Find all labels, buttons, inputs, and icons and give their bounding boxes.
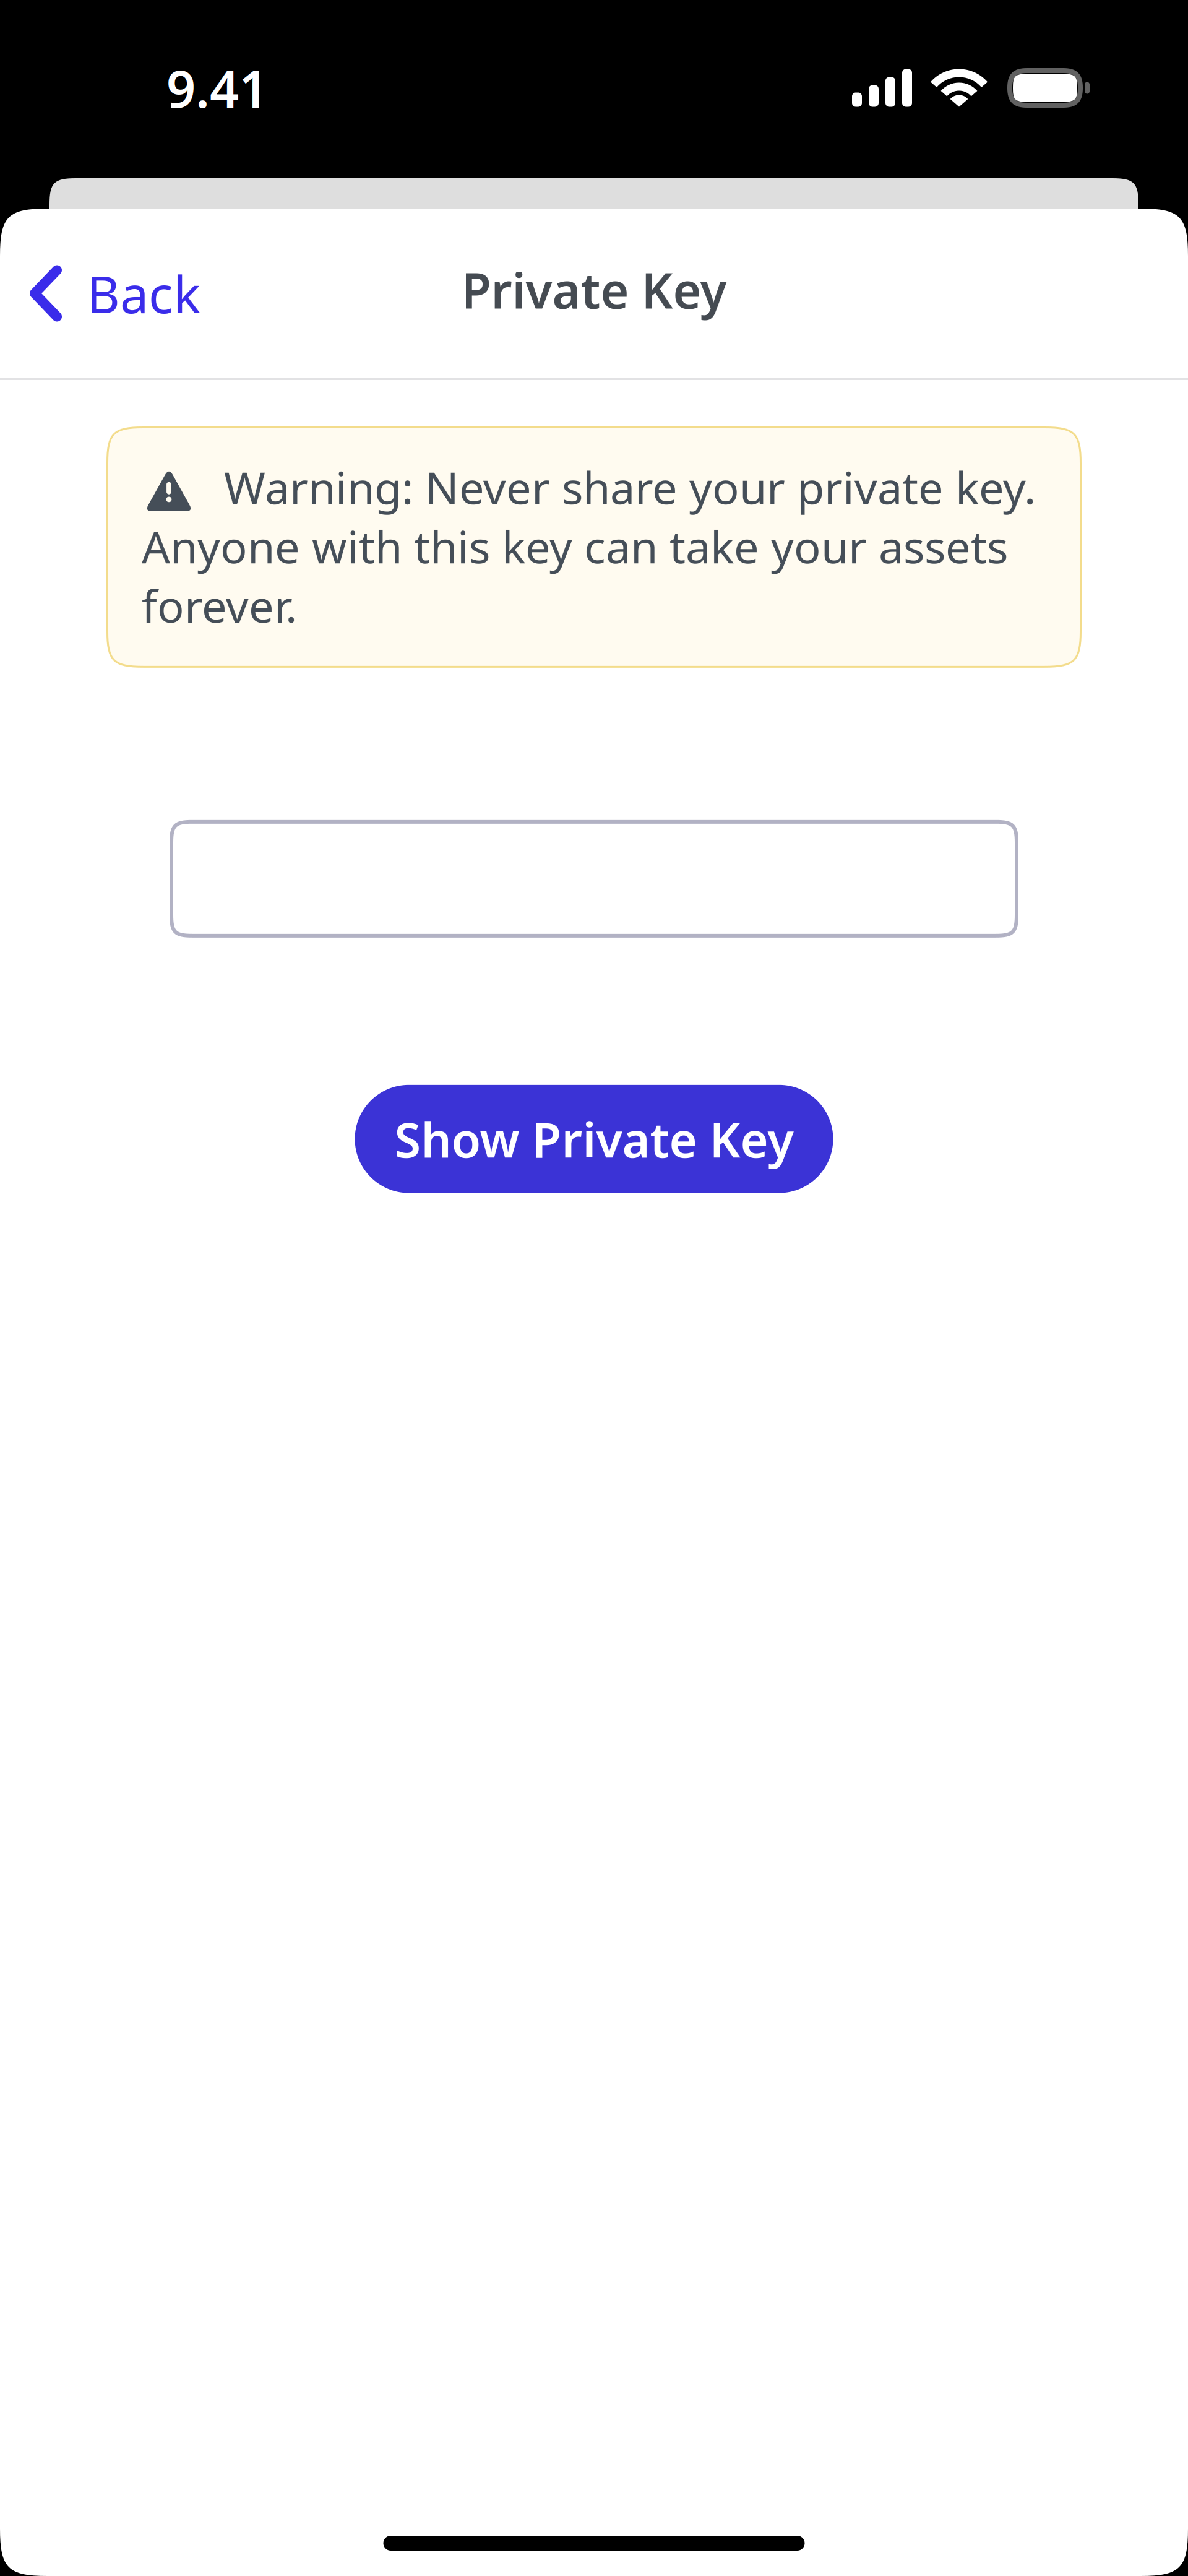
button[interactable]: Show Private Key [355,1085,833,1193]
button[interactable]: Private key [170,820,1018,938]
staticText: Back [87,259,200,327]
button[interactable]: Back [0,240,219,347]
staticText: Private Key [461,257,727,322]
staticText: Show Private Key [394,1107,794,1171]
staticText: 9.41 [166,54,268,122]
staticText: Warning: Never share your private key. A… [142,457,1036,635]
